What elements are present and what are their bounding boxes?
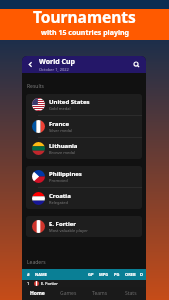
staticText: Home <box>30 290 45 297</box>
button[interactable]: Back <box>25 59 36 70</box>
staticText: Croatia <box>49 192 71 200</box>
staticText: E. Fortier <box>49 220 76 228</box>
staticText: Gold medal <box>49 106 71 111</box>
button[interactable]: Games <box>53 287 84 300</box>
button[interactable]: Home <box>22 287 53 300</box>
button[interactable]: Search <box>131 59 142 70</box>
staticText: World Cup <box>39 57 75 67</box>
staticText: France <box>49 120 70 128</box>
button[interactable]: Lithuania <box>26 138 142 159</box>
staticText: United States <box>49 98 90 106</box>
staticText: D <box>140 272 143 277</box>
staticText: Games <box>60 290 77 297</box>
staticText: OREB <box>125 272 136 277</box>
staticText: PG <box>114 272 120 277</box>
staticText: MPG <box>99 272 109 277</box>
staticText: Promoted <box>49 178 68 183</box>
staticText: Leaders <box>27 259 46 266</box>
staticText: GP <box>88 272 94 277</box>
staticText: October 1, 2022 <box>39 67 69 72</box>
staticText: 1 <box>27 281 30 286</box>
staticText: Results <box>27 83 44 90</box>
staticText: Stats <box>125 290 137 297</box>
staticText: Silver medal <box>49 128 72 133</box>
staticText: Relegated <box>49 200 68 205</box>
staticText: Most valuable player <box>49 228 88 233</box>
staticText: NAME <box>35 272 48 277</box>
staticText: Philippines <box>49 170 82 178</box>
button[interactable]: Croatia <box>26 188 142 209</box>
button[interactable]: Teams <box>84 287 115 300</box>
button[interactable]: France <box>26 116 142 137</box>
button[interactable]: United States <box>26 94 142 115</box>
staticText: Teams <box>92 290 108 297</box>
staticText: E. Fortier <box>41 281 58 286</box>
button[interactable]: Stats <box>115 287 146 300</box>
staticText: Lithuania <box>49 142 78 150</box>
button[interactable]: Philippines <box>26 166 142 187</box>
button[interactable]: E. Fortier <box>26 216 142 237</box>
staticText: Bronze medal <box>49 150 75 155</box>
staticText: # <box>27 272 30 277</box>
staticText: Tournaments <box>33 6 136 27</box>
staticText: with 15 countries playing <box>41 28 129 37</box>
